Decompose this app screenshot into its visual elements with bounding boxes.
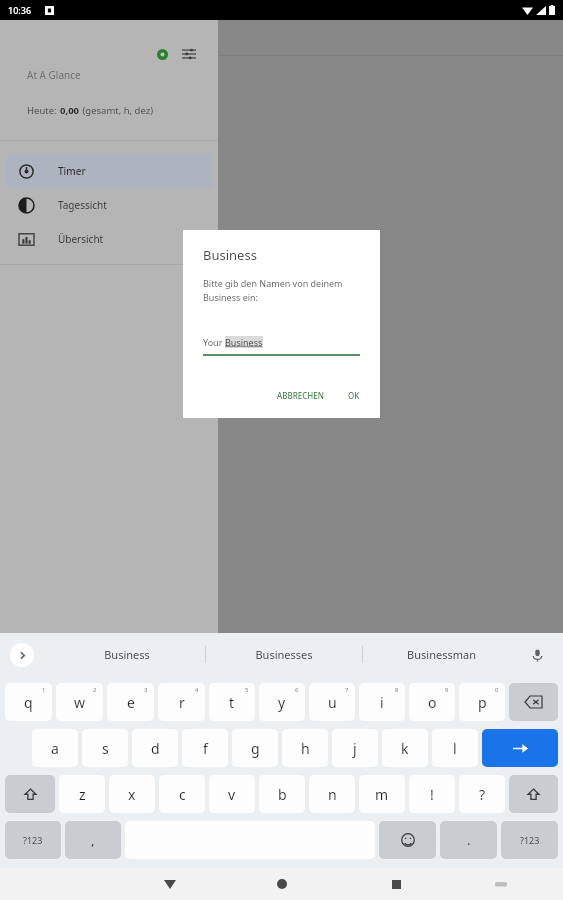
- staticText: q: [24, 693, 33, 712]
- staticText: .: [467, 831, 471, 849]
- staticText: Heute:: [27, 104, 60, 117]
- staticText: Your: [203, 336, 225, 348]
- staticText: w: [74, 693, 86, 712]
- staticText: 8: [395, 686, 399, 694]
- button[interactable]: g: [232, 729, 278, 767]
- staticText: Business: [104, 647, 150, 662]
- staticText: v: [228, 785, 236, 804]
- button[interactable]: [5, 775, 55, 813]
- button[interactable]: a: [32, 729, 78, 767]
- button[interactable]: ABBRECHEN: [269, 385, 332, 406]
- staticText: 1: [42, 686, 46, 694]
- staticText: Business: [225, 336, 263, 348]
- button[interactable]: Enter: [482, 729, 558, 767]
- button[interactable]: ?: [459, 775, 505, 813]
- button[interactable]: Tagessicht: [6, 188, 212, 222]
- button[interactable]: k: [382, 729, 428, 767]
- button[interactable]: j: [332, 729, 378, 767]
- staticText: k: [401, 739, 409, 758]
- staticText: r: [179, 693, 185, 712]
- staticText: 10:36: [8, 4, 32, 16]
- staticText: 5: [245, 686, 249, 694]
- button[interactable]: z: [59, 775, 105, 813]
- staticText: Businesses: [255, 647, 313, 662]
- button[interactable]: q: [5, 683, 52, 721]
- button[interactable]: v: [209, 775, 255, 813]
- staticText: (gesamt, h, dez): [80, 104, 154, 117]
- button[interactable]: t: [209, 683, 255, 721]
- button[interactable]: ?123: [501, 821, 558, 859]
- button[interactable]: OK: [340, 385, 368, 406]
- staticText: i: [380, 693, 384, 712]
- staticText: 7: [345, 686, 349, 694]
- staticText: b: [278, 785, 287, 804]
- button[interactable]: Back: [155, 869, 185, 899]
- staticText: g: [251, 739, 260, 758]
- button[interactable]: Businesses: [206, 633, 362, 676]
- button[interactable]: o: [409, 683, 455, 721]
- button[interactable]: Recents: [381, 869, 411, 899]
- button[interactable]: d: [132, 729, 178, 767]
- staticText: j: [353, 739, 357, 758]
- button[interactable]: e: [107, 683, 154, 721]
- button[interactable]: y: [259, 683, 305, 721]
- staticText: 2: [93, 686, 97, 694]
- staticText: ?123: [520, 834, 540, 846]
- staticText: Übersicht: [58, 232, 104, 246]
- button[interactable]: n: [309, 775, 355, 813]
- button[interactable]: [509, 683, 558, 721]
- staticText: f: [203, 739, 208, 758]
- button[interactable]: ?123: [5, 821, 61, 859]
- button[interactable]: Your: [203, 336, 360, 356]
- staticText: x: [128, 785, 136, 804]
- staticText: 3: [144, 686, 148, 694]
- button[interactable]: Home: [267, 869, 297, 899]
- button[interactable]: Übersicht: [6, 222, 212, 256]
- staticText: At A Glance: [27, 68, 81, 82]
- button[interactable]: Profile badge: [157, 49, 168, 60]
- button[interactable]: Switch keyboard: [486, 869, 516, 899]
- button[interactable]: c: [159, 775, 205, 813]
- staticText: m: [375, 785, 389, 804]
- button[interactable]: Businessman: [363, 633, 519, 676]
- button[interactable]: .: [440, 821, 497, 859]
- staticText: o: [428, 693, 437, 712]
- button[interactable]: m: [359, 775, 405, 813]
- button[interactable]: Timer: [6, 154, 212, 188]
- button[interactable]: r: [158, 683, 205, 721]
- button[interactable]: w: [56, 683, 103, 721]
- button[interactable]: u: [309, 683, 355, 721]
- button[interactable]: x: [109, 775, 155, 813]
- staticText: 4: [195, 686, 199, 694]
- staticText: OK: [348, 390, 360, 401]
- staticText: t: [229, 693, 235, 712]
- staticText: e: [127, 693, 135, 712]
- staticText: Tagessicht: [58, 198, 107, 212]
- staticText: s: [102, 739, 109, 758]
- staticText: l: [453, 739, 457, 758]
- button[interactable]: Expand suggestions: [10, 643, 34, 667]
- button[interactable]: Business: [48, 633, 205, 676]
- staticText: ABBRECHEN: [277, 390, 324, 401]
- staticText: !: [430, 785, 434, 804]
- staticText: u: [328, 693, 337, 712]
- button[interactable]: h: [282, 729, 328, 767]
- button[interactable]: s: [82, 729, 128, 767]
- staticText: ?123: [23, 834, 43, 846]
- button[interactable]: !: [409, 775, 455, 813]
- button[interactable]: Emoji: [379, 821, 436, 859]
- staticText: a: [51, 739, 59, 758]
- button[interactable]: p: [459, 683, 505, 721]
- button[interactable]: b: [259, 775, 305, 813]
- button[interactable]: Settings: [182, 47, 196, 61]
- button[interactable]: ,: [65, 821, 121, 859]
- button[interactable]: [509, 775, 558, 813]
- button[interactable]: Voice input: [527, 645, 547, 665]
- staticText: y: [278, 693, 286, 712]
- button[interactable]: f: [182, 729, 228, 767]
- staticText: 0,00: [60, 104, 80, 117]
- button[interactable]: i: [359, 683, 405, 721]
- button[interactable]: l: [432, 729, 478, 767]
- staticText: z: [79, 785, 86, 804]
